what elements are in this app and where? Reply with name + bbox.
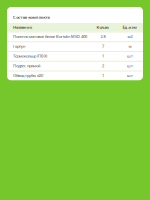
staticText: Состав комплекта	[13, 15, 49, 20]
staticText: м	[128, 43, 131, 49]
staticText: 2.8	[100, 34, 105, 39]
staticText: 2	[102, 63, 104, 68]
staticText: 7	[102, 43, 104, 49]
staticText: Термокольцо (ПВХ)	[13, 53, 47, 58]
staticText: Ед.изм	[122, 25, 136, 30]
staticText: Гарпун	[13, 43, 25, 49]
staticText: Название	[13, 25, 32, 30]
staticText: 1	[102, 73, 104, 78]
staticText: шт	[127, 63, 133, 68]
staticText: шт	[127, 53, 133, 58]
staticText: 1	[102, 53, 104, 58]
staticText: Полотно матовое белое Bortolin MSD 400	[13, 34, 87, 39]
staticText: шт	[127, 73, 133, 78]
staticText: Кол-во	[96, 25, 108, 30]
staticText: Обвод трубы d20	[13, 73, 43, 78]
staticText: м2	[127, 34, 132, 39]
staticText: Подвес прямой	[13, 63, 40, 68]
